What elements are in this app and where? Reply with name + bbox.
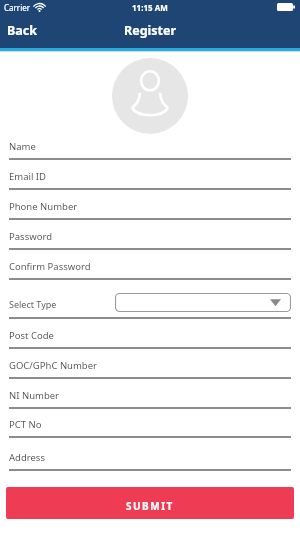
button[interactable]: Address bbox=[9, 438, 291, 471]
staticText: PCT No bbox=[9, 418, 42, 431]
staticText: Password bbox=[9, 230, 52, 243]
staticText: Carrier bbox=[4, 2, 31, 13]
button[interactable]: Select Type bbox=[9, 280, 291, 319]
staticText: SUBMIT bbox=[126, 499, 174, 513]
button[interactable]: Phone Number bbox=[9, 190, 291, 220]
staticText: Register bbox=[124, 22, 177, 39]
staticText: Back bbox=[7, 22, 38, 39]
button[interactable]: GOC/GPhC Number bbox=[9, 349, 291, 379]
staticText: GOC/GPhC Number bbox=[9, 359, 97, 372]
button[interactable]: Email ID bbox=[9, 160, 291, 190]
staticText: Confirm Password bbox=[9, 260, 91, 273]
staticText: Phone Number bbox=[9, 200, 78, 213]
staticText: Select Type bbox=[9, 298, 57, 310]
staticText: NI Number bbox=[9, 389, 60, 402]
button[interactable]: Password bbox=[9, 220, 291, 250]
staticText: Post Code bbox=[9, 329, 54, 342]
button[interactable]: Post Code bbox=[9, 319, 291, 349]
button[interactable]: SUBMIT bbox=[6, 487, 294, 519]
button[interactable]: Confirm Password bbox=[9, 250, 291, 280]
staticText: Email ID bbox=[9, 170, 47, 183]
staticText: 11:15 AM bbox=[132, 2, 168, 13]
button[interactable]: Back bbox=[7, 22, 38, 39]
staticText: Address bbox=[9, 451, 45, 464]
staticText: Name bbox=[9, 140, 36, 153]
button[interactable]: NI Number bbox=[9, 379, 291, 409]
button[interactable]: PCT No bbox=[9, 409, 291, 438]
button[interactable]: Name bbox=[9, 134, 291, 160]
